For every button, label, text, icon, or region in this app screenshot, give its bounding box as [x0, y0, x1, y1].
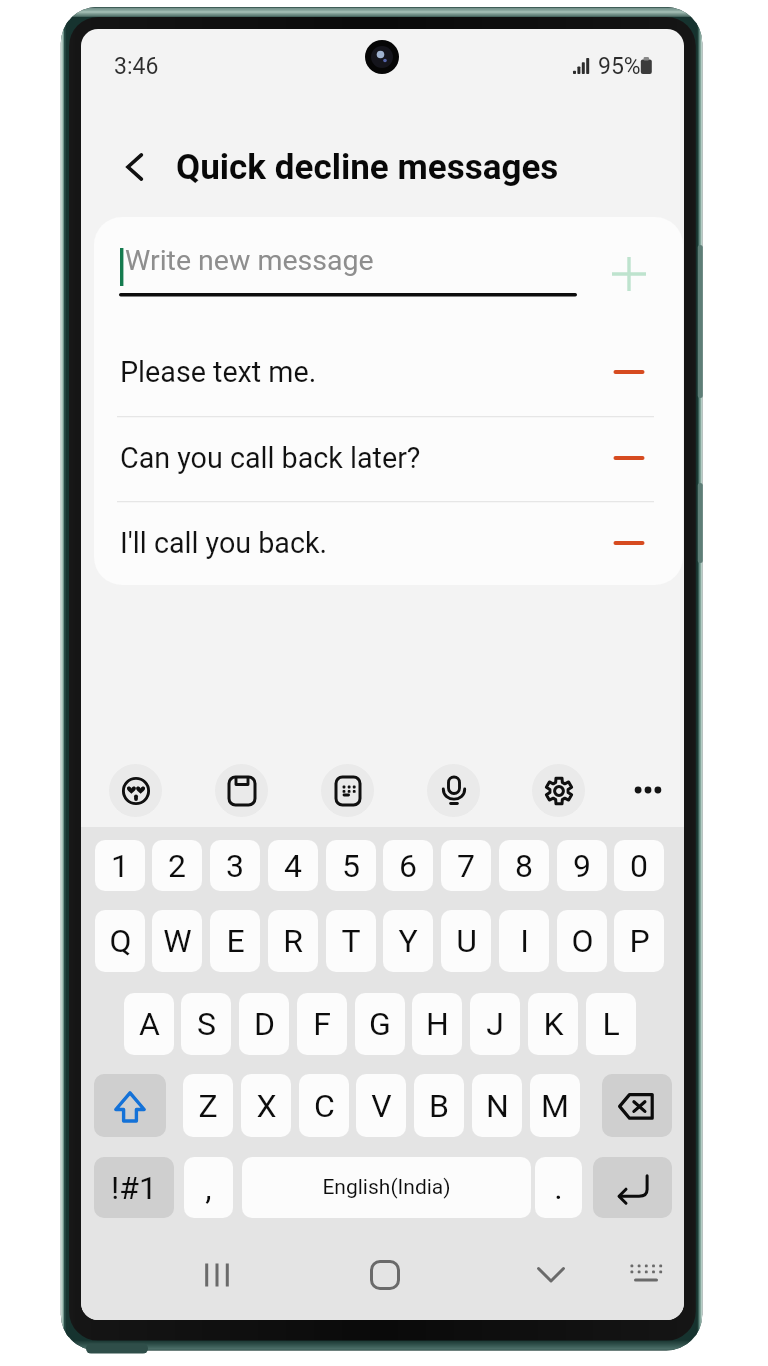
staticText: 6	[399, 847, 417, 885]
button[interactable]: O	[557, 910, 607, 972]
button[interactable]: U	[441, 910, 491, 972]
staticText: U	[456, 922, 477, 960]
button[interactable]: Y	[383, 910, 433, 972]
button[interactable]: Recents	[189, 1247, 245, 1303]
button[interactable]: Backspace	[602, 1074, 672, 1137]
button[interactable]: 0	[614, 840, 664, 891]
button[interactable]: Change keyboard	[618, 1247, 674, 1303]
button[interactable]: I'll call you back.	[94, 501, 683, 585]
staticText: Can you call back later?	[120, 441, 421, 475]
staticText: G	[369, 1005, 391, 1043]
button[interactable]: Add new message	[603, 248, 655, 300]
staticText: Please text me.	[120, 355, 317, 389]
staticText: 7	[457, 847, 475, 885]
staticText: I'll call you back.	[120, 526, 328, 560]
staticText: ,	[205, 1169, 212, 1207]
button[interactable]: 3	[210, 840, 260, 891]
button[interactable]: Please text me.	[94, 330, 683, 414]
staticText: .	[554, 1169, 563, 1207]
button[interactable]: !#1	[94, 1157, 174, 1218]
button[interactable]: Keyboard modes	[321, 764, 374, 817]
staticText: J	[486, 1005, 504, 1043]
staticText: Write new message	[125, 244, 374, 277]
button[interactable]: D	[239, 993, 289, 1055]
button[interactable]: Emoji	[109, 764, 162, 817]
button[interactable]: T	[326, 910, 376, 972]
button[interactable]: H	[412, 993, 462, 1055]
button[interactable]: M	[530, 1074, 580, 1137]
staticText: L	[602, 1005, 620, 1043]
button[interactable]: .	[535, 1157, 582, 1218]
button[interactable]: 4	[268, 840, 318, 891]
button[interactable]: 5	[326, 840, 376, 891]
staticText: B	[429, 1087, 449, 1125]
button[interactable]: A	[124, 993, 174, 1055]
button[interactable]: 9	[557, 840, 607, 891]
button[interactable]: B	[414, 1074, 464, 1137]
staticText: X	[256, 1087, 277, 1125]
staticText: 0	[630, 847, 648, 885]
staticText: K	[543, 1005, 564, 1043]
button[interactable]: G	[355, 993, 405, 1055]
staticText: 5	[342, 847, 360, 885]
staticText: D	[254, 1005, 275, 1043]
button[interactable]: 7	[441, 840, 491, 891]
staticText: 3:46	[114, 53, 159, 80]
button[interactable]: Home	[357, 1247, 413, 1303]
button[interactable]: V	[356, 1074, 406, 1137]
staticText: 9	[573, 847, 591, 885]
button[interactable]: Back	[109, 141, 161, 193]
button[interactable]: J	[470, 993, 520, 1055]
staticText: N	[486, 1087, 509, 1125]
button[interactable]: Q	[95, 910, 145, 972]
button[interactable]: 2	[152, 840, 202, 891]
button[interactable]: ,	[184, 1157, 233, 1218]
staticText: 1	[111, 847, 129, 885]
button[interactable]: Settings	[532, 764, 585, 817]
staticText: 8	[515, 847, 533, 885]
button[interactable]: Can you call back later?	[94, 416, 683, 500]
button[interactable]: I	[499, 910, 549, 972]
button[interactable]: C	[299, 1074, 349, 1137]
button[interactable]: Shift	[94, 1074, 166, 1137]
button[interactable]: P	[614, 910, 664, 972]
button[interactable]: 6	[383, 840, 433, 891]
button[interactable]: English(India)	[242, 1157, 531, 1218]
staticText: O	[571, 922, 594, 960]
button[interactable]: X	[241, 1074, 291, 1137]
staticText: W	[163, 922, 192, 960]
staticText: A	[139, 1005, 160, 1043]
button[interactable]: More options	[620, 762, 676, 818]
button[interactable]: 8	[499, 840, 549, 891]
button[interactable]: L	[586, 993, 636, 1055]
staticText: 2	[168, 847, 186, 885]
button[interactable]: Remove message	[603, 346, 655, 398]
staticText: M	[541, 1087, 569, 1125]
button[interactable]: Remove message	[603, 517, 655, 569]
button[interactable]: N	[472, 1074, 522, 1137]
staticText: R	[283, 922, 303, 960]
staticText: T	[341, 922, 361, 960]
button[interactable]: K	[528, 993, 578, 1055]
button[interactable]: Voice input	[427, 764, 480, 817]
staticText: Y	[398, 922, 418, 960]
button[interactable]: Clipboard	[215, 764, 268, 817]
staticText: Q	[109, 922, 132, 960]
button[interactable]: R	[268, 910, 318, 972]
button[interactable]: 1	[95, 840, 145, 891]
button[interactable]: Z	[183, 1074, 233, 1137]
button[interactable]: Enter	[593, 1157, 672, 1218]
staticText: E	[226, 922, 245, 960]
staticText: F	[313, 1005, 331, 1043]
staticText: S	[197, 1005, 216, 1043]
button[interactable]: Remove message	[603, 432, 655, 484]
staticText: Z	[198, 1087, 218, 1125]
staticText: P	[629, 922, 650, 960]
staticText: C	[314, 1087, 335, 1125]
button[interactable]: S	[181, 993, 231, 1055]
button[interactable]: Hide keyboard	[523, 1247, 579, 1303]
button[interactable]: F	[297, 993, 347, 1055]
staticText: English(India)	[322, 1175, 451, 1200]
button[interactable]: W	[152, 910, 202, 972]
button[interactable]: E	[210, 910, 260, 972]
